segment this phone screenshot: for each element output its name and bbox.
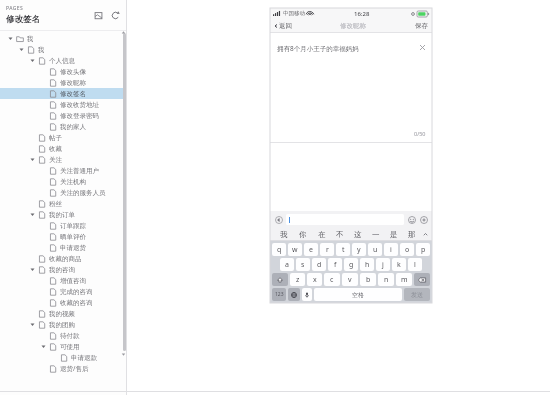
button[interactable]: 123 — [272, 288, 286, 301]
button[interactable]: 个人信息 — [0, 55, 127, 66]
staticText: 粉丝 — [49, 200, 62, 208]
staticText: PAGES — [6, 5, 24, 12]
button[interactable]: 我 — [0, 33, 127, 44]
button[interactable]: 我的订单 — [0, 209, 127, 220]
button[interactable]: 不 — [331, 227, 349, 241]
button[interactable]: u — [368, 243, 382, 256]
button[interactable]: Refresh — [109, 9, 121, 21]
button[interactable]: v — [342, 273, 358, 286]
button[interactable]: 粉丝 — [0, 198, 127, 209]
button[interactable]: g — [344, 258, 358, 271]
button[interactable] — [286, 214, 404, 225]
button[interactable]: c — [324, 273, 340, 286]
button[interactable]: 这 — [349, 227, 367, 241]
button[interactable]: Clear — [419, 44, 426, 51]
button[interactable]: 关注 — [0, 154, 127, 165]
button[interactable]: Backspace — [414, 273, 430, 286]
button[interactable]: Voice — [302, 288, 312, 301]
button[interactable]: 收藏 — [0, 143, 127, 154]
button[interactable]: 待付款 — [0, 330, 127, 341]
button[interactable]: 修改昵称 — [0, 77, 127, 88]
staticText: 修改昵称 — [60, 79, 86, 87]
button[interactable]: y — [352, 243, 366, 256]
button[interactable]: 保存 — [415, 22, 428, 30]
button[interactable]: d — [312, 258, 326, 271]
staticText: 修改头像 — [60, 68, 86, 76]
button[interactable]: n — [378, 273, 394, 286]
button[interactable]: b — [360, 273, 376, 286]
button[interactable]: 退货/售后 — [0, 363, 127, 374]
staticText: 这 — [354, 230, 362, 239]
button[interactable]: 晒单评价 — [0, 231, 127, 242]
button[interactable]: 我 — [274, 227, 293, 241]
button[interactable]: 帖子 — [0, 132, 127, 143]
button[interactable]: 关注普通用户 — [0, 165, 127, 176]
button[interactable]: 我的咨询 — [0, 264, 127, 275]
button[interactable]: 一 — [367, 227, 385, 241]
button[interactable]: More candidates — [421, 227, 430, 241]
button[interactable]: p — [416, 243, 430, 256]
button[interactable]: More — [419, 215, 428, 224]
button[interactable]: Switch language — [288, 288, 300, 301]
button[interactable]: 申请退款 — [0, 352, 127, 363]
button[interactable]: s — [296, 258, 310, 271]
button[interactable]: 发送 — [404, 288, 430, 301]
button[interactable]: 收藏的咨询 — [0, 297, 127, 308]
staticText: 我 — [27, 35, 34, 43]
staticText: 返回 — [279, 22, 292, 30]
button[interactable]: 修改收货地址 — [0, 99, 127, 110]
button[interactable]: Shift — [272, 273, 288, 286]
button[interactable]: t — [336, 243, 350, 256]
button[interactable]: 可使用 — [0, 341, 127, 352]
staticText: 保存 — [415, 22, 428, 30]
button[interactable]: 申请退货 — [0, 242, 127, 253]
button[interactable]: Voice input — [274, 215, 283, 224]
staticText: 0/50 — [414, 130, 426, 137]
staticText: 收藏的商品 — [49, 255, 82, 263]
button[interactable]: m — [396, 273, 412, 286]
button[interactable]: f — [328, 258, 342, 271]
button[interactable]: l — [408, 258, 422, 271]
button[interactable]: 我的家人 — [0, 121, 127, 132]
staticText: b — [366, 275, 371, 285]
button[interactable]: 返回 — [274, 22, 292, 30]
staticText: 我的团购 — [49, 321, 75, 329]
staticText: 修改签名 — [6, 14, 40, 25]
button[interactable]: x — [307, 273, 322, 286]
button[interactable]: 你 — [293, 227, 312, 241]
button[interactable]: 修改头像 — [0, 66, 127, 77]
button[interactable]: 我的团购 — [0, 319, 127, 330]
button[interactable]: k — [392, 258, 406, 271]
button[interactable]: 修改签名 — [0, 88, 127, 99]
button[interactable]: 完成的咨询 — [0, 286, 127, 297]
button[interactable]: Emoji — [407, 215, 416, 224]
button[interactable]: h — [360, 258, 374, 271]
button[interactable]: 在 — [312, 227, 331, 241]
button[interactable]: 订单跟踪 — [0, 220, 127, 231]
staticText: 不 — [336, 230, 344, 239]
button[interactable]: a — [280, 258, 294, 271]
button[interactable]: 增值咨询 — [0, 275, 127, 286]
button[interactable]: r — [320, 243, 334, 256]
button[interactable]: 关注的服务人员 — [0, 187, 127, 198]
button[interactable]: Export — [92, 9, 104, 21]
button[interactable]: j — [376, 258, 390, 271]
button[interactable]: 收藏的商品 — [0, 253, 127, 264]
staticText: k — [397, 260, 401, 270]
button[interactable]: w — [288, 243, 302, 256]
button[interactable]: 我 — [0, 44, 127, 55]
staticText: u — [373, 245, 378, 255]
button[interactable]: 关注机构 — [0, 176, 127, 187]
button[interactable]: 是 — [385, 227, 403, 241]
button[interactable]: i — [384, 243, 398, 256]
button[interactable]: e — [304, 243, 318, 256]
button[interactable]: z — [290, 273, 305, 286]
button[interactable]: 我的视频 — [0, 308, 127, 319]
staticText: 修改昵称 — [340, 22, 366, 30]
staticText: a — [285, 260, 289, 270]
button[interactable]: 修改登录密码 — [0, 110, 127, 121]
button[interactable]: q — [272, 243, 286, 256]
button[interactable]: 那 — [403, 227, 421, 241]
button[interactable]: 空格 — [314, 288, 402, 301]
button[interactable]: o — [400, 243, 414, 256]
